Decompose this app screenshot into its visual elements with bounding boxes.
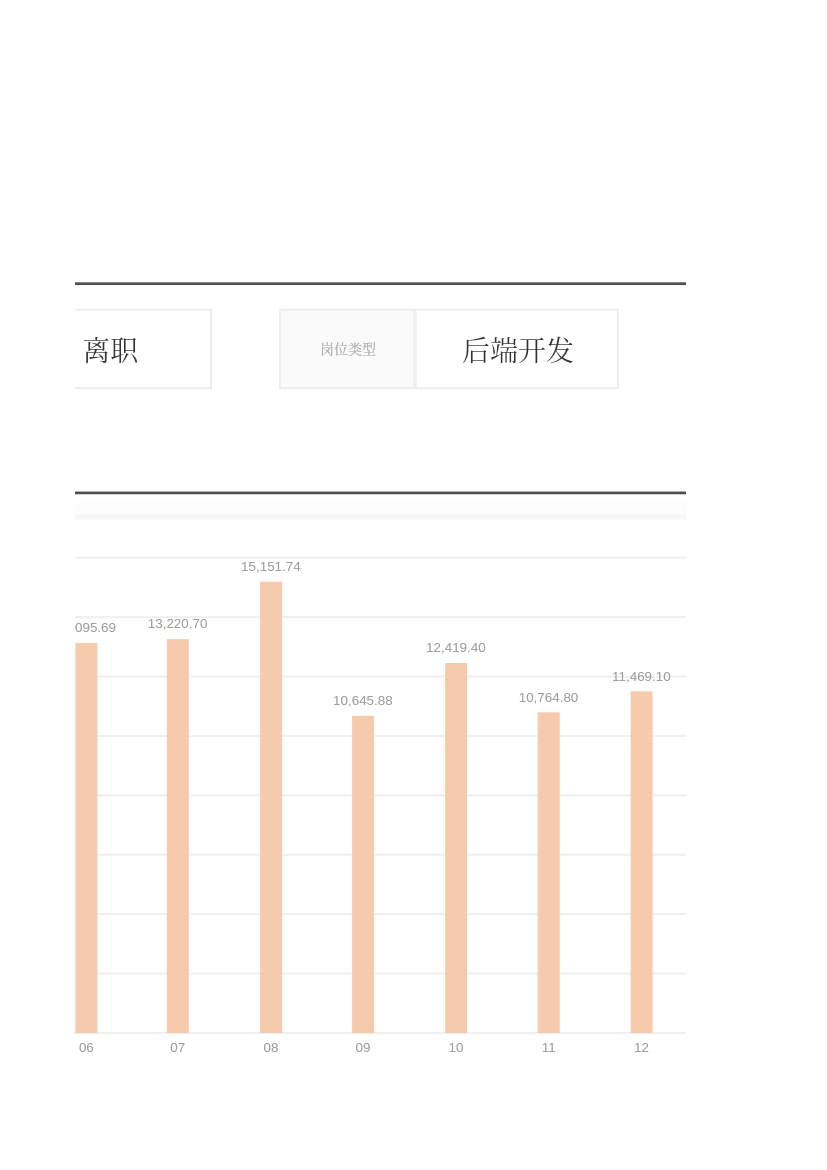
button[interactable]: 11,469.10 12 — [613, 667, 671, 1033]
button[interactable]: 12,419.40 10 — [427, 639, 485, 1033]
button[interactable]: 13,095.69 06 — [57, 619, 115, 1033]
button[interactable]: 15,151.74 08 — [242, 558, 300, 1033]
button[interactable]: 10,645.88 09 — [334, 692, 392, 1033]
button[interactable]: 离职 — [9, 309, 212, 389]
button[interactable]: 后端开发 — [415, 309, 619, 389]
button[interactable]: 岗位类型 — [279, 309, 415, 389]
button[interactable]: 10,764.80 11 — [520, 688, 578, 1033]
button[interactable]: 13,220.70 07 — [149, 615, 207, 1033]
